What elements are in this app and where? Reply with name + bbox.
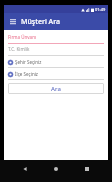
button[interactable]: Firma Ünvanı [4, 32, 108, 44]
button[interactable]: İlçe Seçiniz [4, 68, 108, 80]
staticText: Ara [51, 85, 61, 93]
button[interactable]: T.C. Kimlik [4, 44, 108, 56]
staticText: Firma Ünvanı [8, 34, 37, 40]
staticText: Müşteri Ara [21, 17, 60, 27]
staticText: 01:49 [95, 7, 106, 12]
button[interactable]: Ara [8, 83, 104, 94]
staticText: İlçe Seçiniz [15, 71, 38, 77]
staticText: Şehir Seçiniz [15, 59, 42, 65]
button[interactable]: Şehir Seçiniz [4, 56, 108, 68]
staticText: T.C. Kimlik [8, 46, 30, 52]
button[interactable]: Back [19, 163, 31, 175]
button[interactable]: Open navigation menu [8, 17, 18, 27]
button[interactable]: Home [50, 163, 62, 175]
button[interactable]: Recent apps [81, 163, 93, 175]
